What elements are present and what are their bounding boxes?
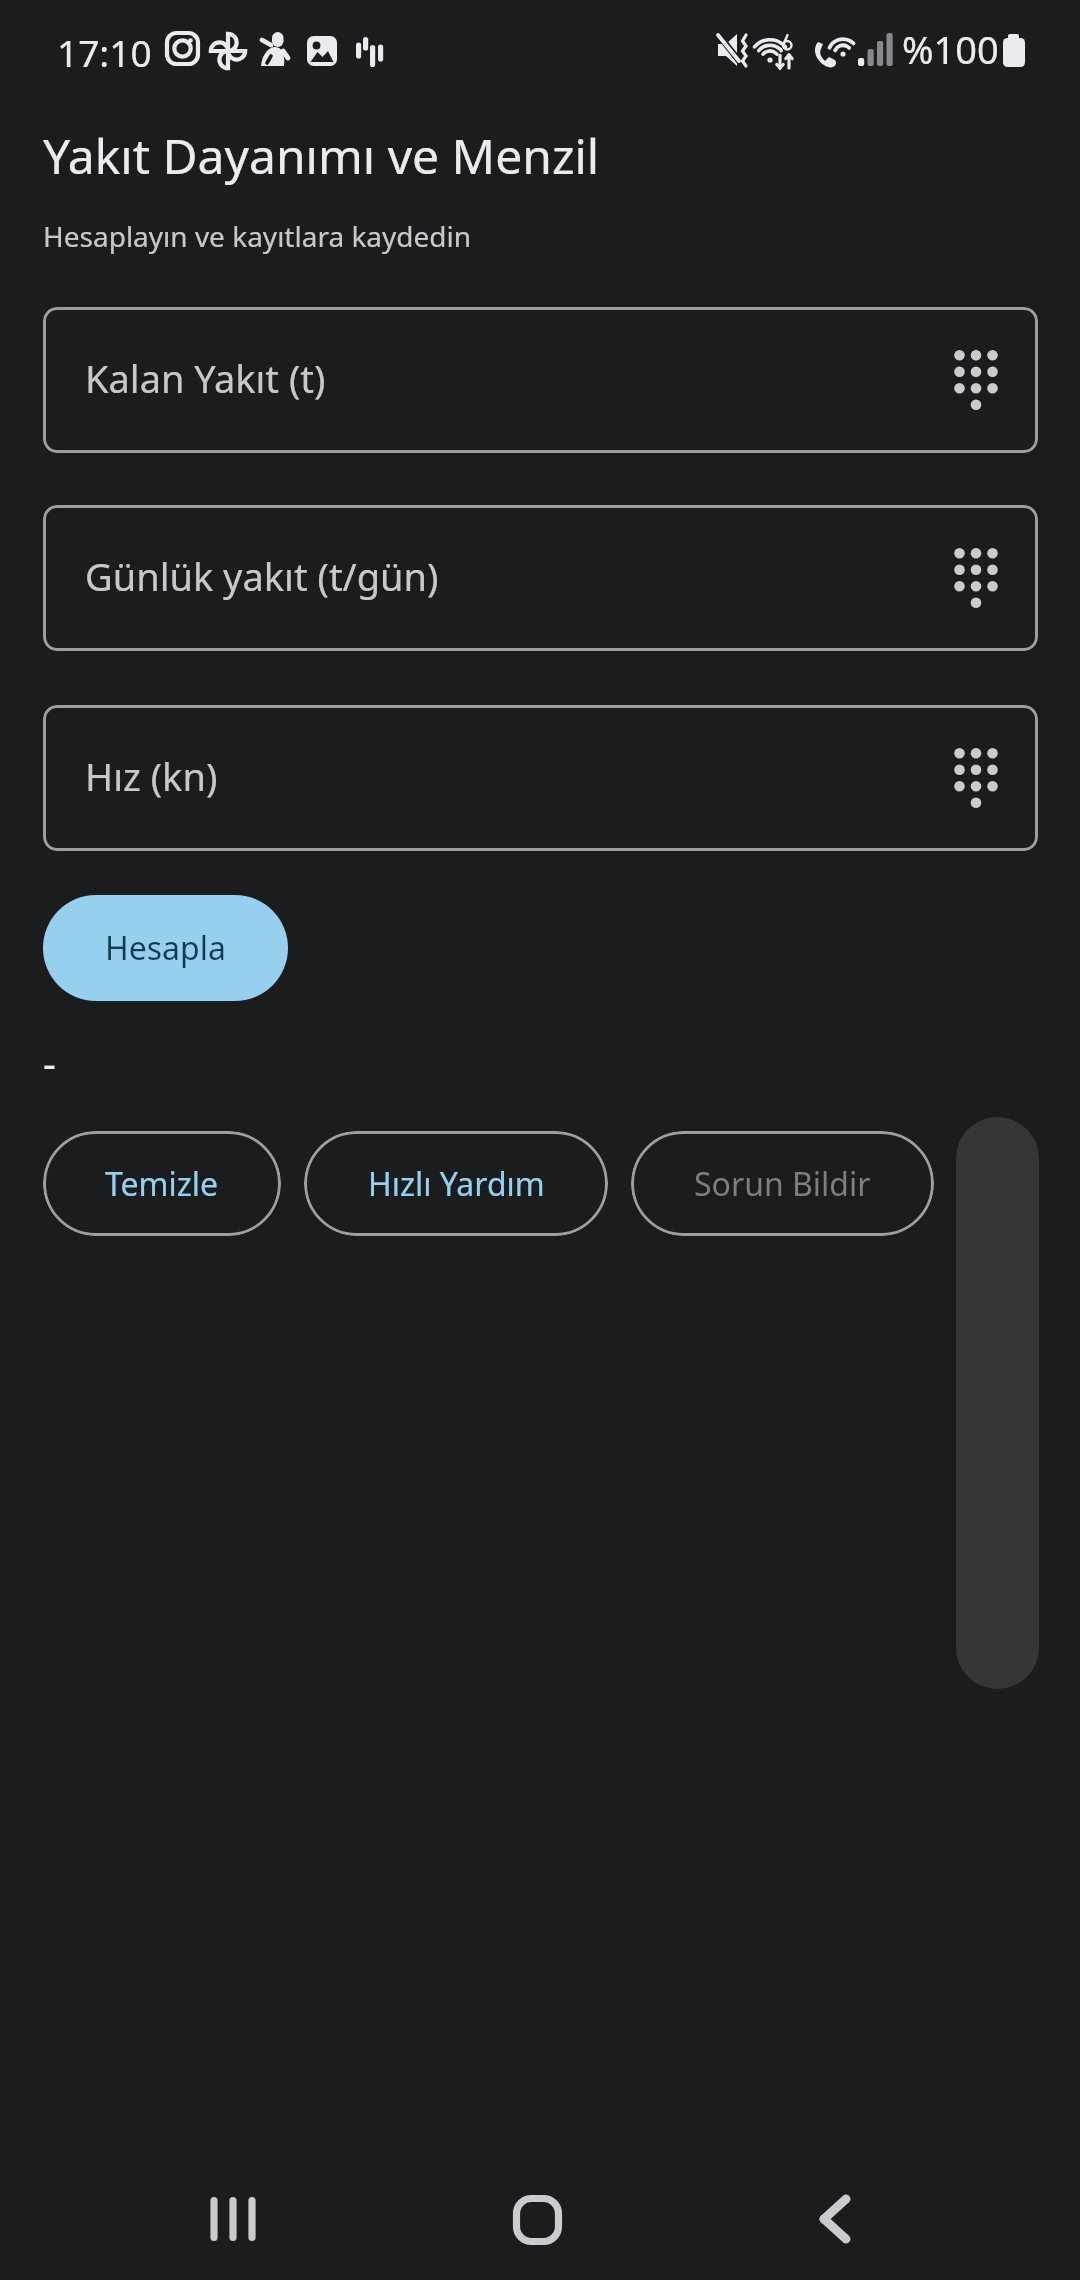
button[interactable]: Tuş takımı <box>938 342 1014 418</box>
button[interactable]: Hızlı Yardım <box>304 1131 608 1236</box>
staticText: - <box>43 1035 56 1089</box>
button[interactable]: Temizle <box>43 1131 281 1236</box>
staticText: Sorun Bildir <box>694 1162 871 1206</box>
staticText: %100 <box>902 23 999 75</box>
staticText: Yakıt Dayanımı ve Menzil <box>43 123 600 188</box>
button[interactable]: Sorun Bildir <box>631 1131 934 1236</box>
button[interactable]: Son kullanılanlar <box>172 2158 294 2280</box>
staticText: Hesaplayın ve kayıtlara kaydedin <box>43 217 472 255</box>
staticText: Günlük yakıt (t/gün) <box>85 550 439 602</box>
staticText: Hız (kn) <box>85 750 218 802</box>
staticText: Kalan Yakıt (t) <box>85 352 326 404</box>
staticText: Hızlı Yardım <box>368 1162 545 1206</box>
button[interactable]: Tuş takımı <box>938 740 1014 816</box>
button[interactable]: Kalan Yakıt (t) <box>43 307 1038 453</box>
button[interactable]: Ana ekran <box>475 2158 597 2280</box>
staticText: Temizle <box>105 1162 219 1206</box>
staticText: 17:10 <box>57 27 152 77</box>
staticText: Hesapla <box>105 926 226 970</box>
button[interactable]: Günlük yakıt (t/gün) <box>43 505 1038 651</box>
button[interactable]: Geri <box>776 2158 898 2280</box>
button[interactable]: Hız (kn) <box>43 705 1038 851</box>
button[interactable]: Tuş takımı <box>938 540 1014 616</box>
button[interactable]: Hesapla <box>43 895 288 1001</box>
